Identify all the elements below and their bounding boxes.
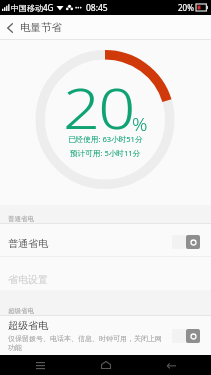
staticText: 预计可用: 5小时11分: [70, 148, 141, 158]
staticText: 普通省电: [8, 237, 48, 250]
button[interactable]: 超级省电: [0, 316, 211, 355]
button[interactable]: 省电设置: [0, 257, 211, 290]
button[interactable]: Back: [0, 15, 20, 40]
staticText: 仅保留拨号、电话本、信息、时钟可用，关闭上网功能: [8, 334, 166, 352]
button[interactable]: Back: [146, 355, 196, 375]
button[interactable]: 普通省电: [0, 224, 211, 256]
staticText: %: [132, 111, 148, 137]
staticText: 20%: [178, 2, 194, 13]
staticText: 20: [63, 70, 134, 145]
button[interactable]: Home: [81, 355, 131, 375]
staticText: 中国移动4G: [11, 2, 54, 13]
staticText: 普通省电: [8, 215, 34, 223]
staticText: 电量节省: [20, 21, 62, 34]
staticText: 超级省电: [8, 319, 48, 332]
staticText: 已经使用: 63小时51分: [68, 134, 143, 144]
staticText: 省电设置: [8, 273, 48, 286]
staticText: •••: [75, 4, 82, 12]
staticText: 超级省电: [8, 307, 34, 315]
staticText: 08:45: [86, 2, 108, 14]
button[interactable]: Menu: [15, 355, 65, 375]
